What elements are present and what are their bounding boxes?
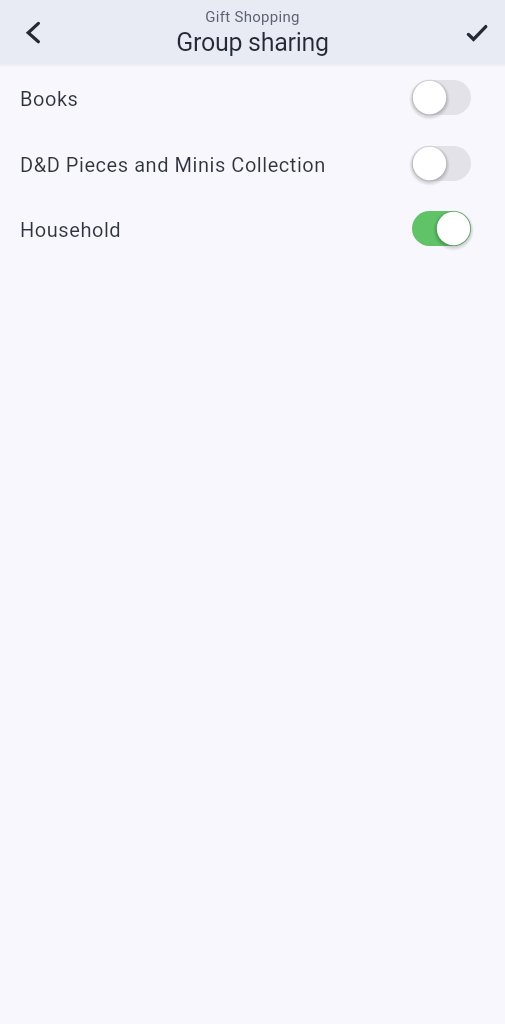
button[interactable]: Sharing on xyxy=(409,208,474,249)
staticText: D&D Pieces and Minis Collection xyxy=(20,153,409,176)
staticText: Household xyxy=(20,218,409,241)
button[interactable]: Done xyxy=(450,6,502,58)
button[interactable]: Household xyxy=(0,197,505,262)
button[interactable]: D&D Pieces and Minis Collection xyxy=(0,132,505,197)
button[interactable]: Back xyxy=(6,6,58,58)
staticText: Group sharing xyxy=(176,28,329,57)
button[interactable]: Sharing off xyxy=(409,77,474,118)
staticText: Gift Shopping xyxy=(205,8,300,26)
staticText: Books xyxy=(20,87,409,110)
button[interactable]: Books xyxy=(0,66,505,131)
button[interactable]: Sharing off xyxy=(409,143,474,184)
